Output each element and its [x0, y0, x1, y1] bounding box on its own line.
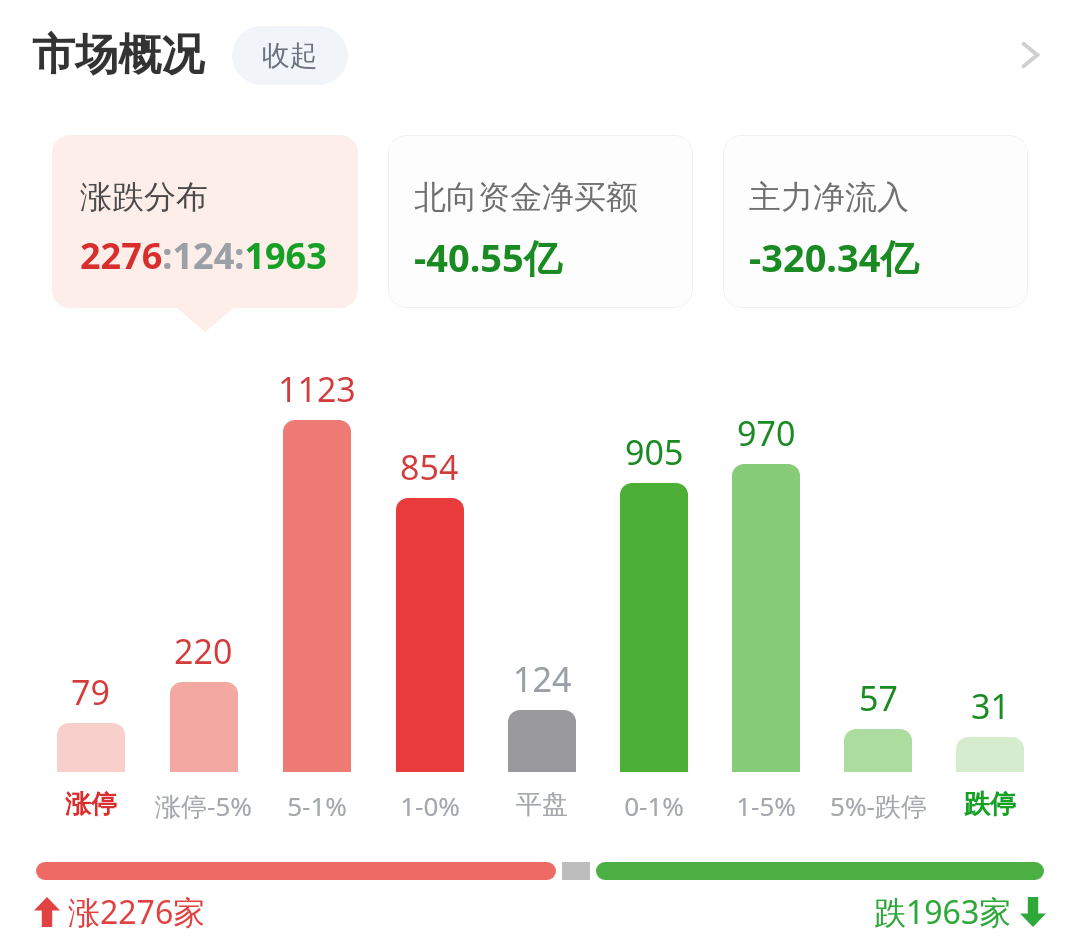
staticText: 涨跌分布 — [80, 177, 208, 217]
staticText: 124 — [513, 656, 572, 702]
staticText: 905 — [625, 429, 684, 475]
staticText: 涨停 — [65, 788, 117, 821]
button[interactable]: 主力净流入 — [723, 135, 1028, 308]
staticText: 57 — [859, 675, 898, 721]
button[interactable]: 跌1963家 — [874, 890, 1046, 934]
button[interactable]: 涨跌分布 — [52, 135, 358, 308]
staticText: 市场概况 — [32, 28, 204, 82]
staticText: 涨2276家 — [68, 890, 206, 934]
button[interactable]: 收起 — [232, 26, 348, 85]
staticText: -40.55亿 — [414, 231, 562, 283]
staticText: 220 — [174, 628, 233, 674]
button[interactable]: 涨2276家 — [34, 890, 206, 934]
staticText: -320.34亿 — [749, 231, 919, 283]
button[interactable]: More — [994, 19, 1066, 91]
staticText: 79 — [71, 669, 110, 715]
button[interactable]: 905 — [598, 429, 710, 772]
staticText: 854 — [400, 444, 459, 490]
staticText: 1123 — [278, 366, 356, 412]
button[interactable]: 220 — [147, 628, 260, 772]
staticText: 970 — [737, 410, 796, 456]
staticText: 跌1963家 — [874, 890, 1012, 934]
staticText: 平盘 — [516, 788, 568, 821]
button[interactable]: 1123 — [260, 366, 373, 772]
staticText: 跌停 — [964, 788, 1016, 821]
staticText: 北向资金净买额 — [414, 177, 638, 217]
button[interactable]: 124 — [486, 656, 598, 772]
button[interactable]: 854 — [373, 444, 486, 772]
button[interactable]: 北向资金净买额 — [388, 135, 693, 308]
staticText: 2276:124:1963 — [80, 231, 327, 280]
staticText: 5-1% — [287, 788, 347, 823]
staticText: 5%-跌停 — [830, 788, 927, 824]
staticText: 0-1% — [624, 788, 684, 823]
staticText: 1-0% — [400, 788, 460, 823]
button[interactable]: 970 — [710, 410, 822, 772]
button[interactable]: 31 — [934, 683, 1046, 772]
staticText: 主力净流入 — [749, 177, 909, 217]
button[interactable]: 57 — [822, 675, 934, 772]
button[interactable]: 79 — [34, 669, 147, 772]
staticText: 涨停-5% — [155, 788, 252, 824]
staticText: 1-5% — [736, 788, 796, 823]
staticText: 31 — [971, 683, 1010, 729]
staticText: 收起 — [262, 38, 318, 73]
